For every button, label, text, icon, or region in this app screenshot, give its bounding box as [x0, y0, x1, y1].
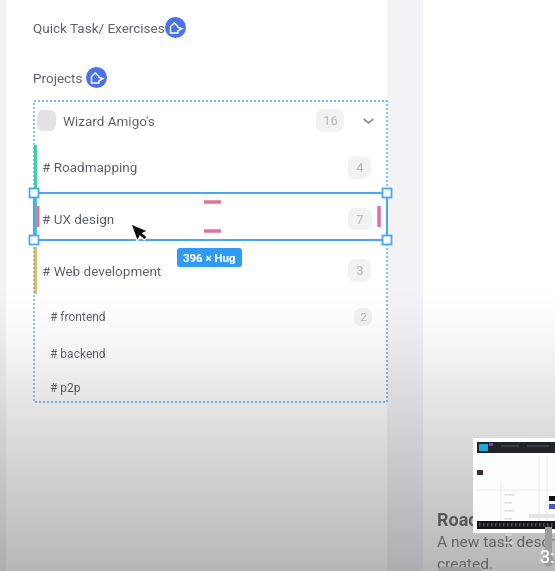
- staticText: A new task descriptio created.: [437, 533, 555, 571]
- staticText: Projects: [33, 70, 83, 86]
- button[interactable]: [437, 567, 483, 571]
- staticText: # Roadmapping: [42, 159, 138, 175]
- button[interactable]: Road: [437, 509, 479, 530]
- button[interactable]: # Web development: [34, 247, 387, 294]
- button[interactable]: # backend: [34, 336, 387, 371]
- button[interactable]: # frontend: [34, 299, 387, 334]
- staticText: # UX design: [42, 211, 115, 227]
- staticText: # frontend: [50, 310, 106, 324]
- staticText: # Web development: [42, 263, 162, 279]
- staticText: # p2p: [50, 381, 81, 395]
- staticText: 2: [360, 311, 367, 324]
- staticText: 3: [356, 263, 364, 278]
- button[interactable]: Wizard Amigo's: [34, 101, 387, 140]
- staticText: 4: [356, 160, 364, 175]
- staticText: 396 × Hug: [183, 251, 236, 264]
- button[interactable]: Quick Task/ Exercises: [33, 16, 186, 39]
- staticText: Wizard Amigo's: [63, 113, 155, 129]
- button[interactable]: Projects: [33, 66, 107, 89]
- other: Collapse: [361, 113, 376, 128]
- staticText: Quick Task/ Exercises: [33, 20, 165, 36]
- staticText: 3:3: [540, 546, 555, 567]
- button[interactable]: Add: [165, 17, 186, 38]
- staticText: 7: [356, 212, 364, 227]
- button[interactable]: # Roadmapping: [34, 144, 387, 190]
- staticText: 16: [323, 113, 338, 128]
- button[interactable]: # UX design: [34, 195, 387, 242]
- button[interactable]: Add: [86, 67, 107, 88]
- staticText: # backend: [50, 347, 106, 361]
- button[interactable]: # p2p: [34, 372, 387, 404]
